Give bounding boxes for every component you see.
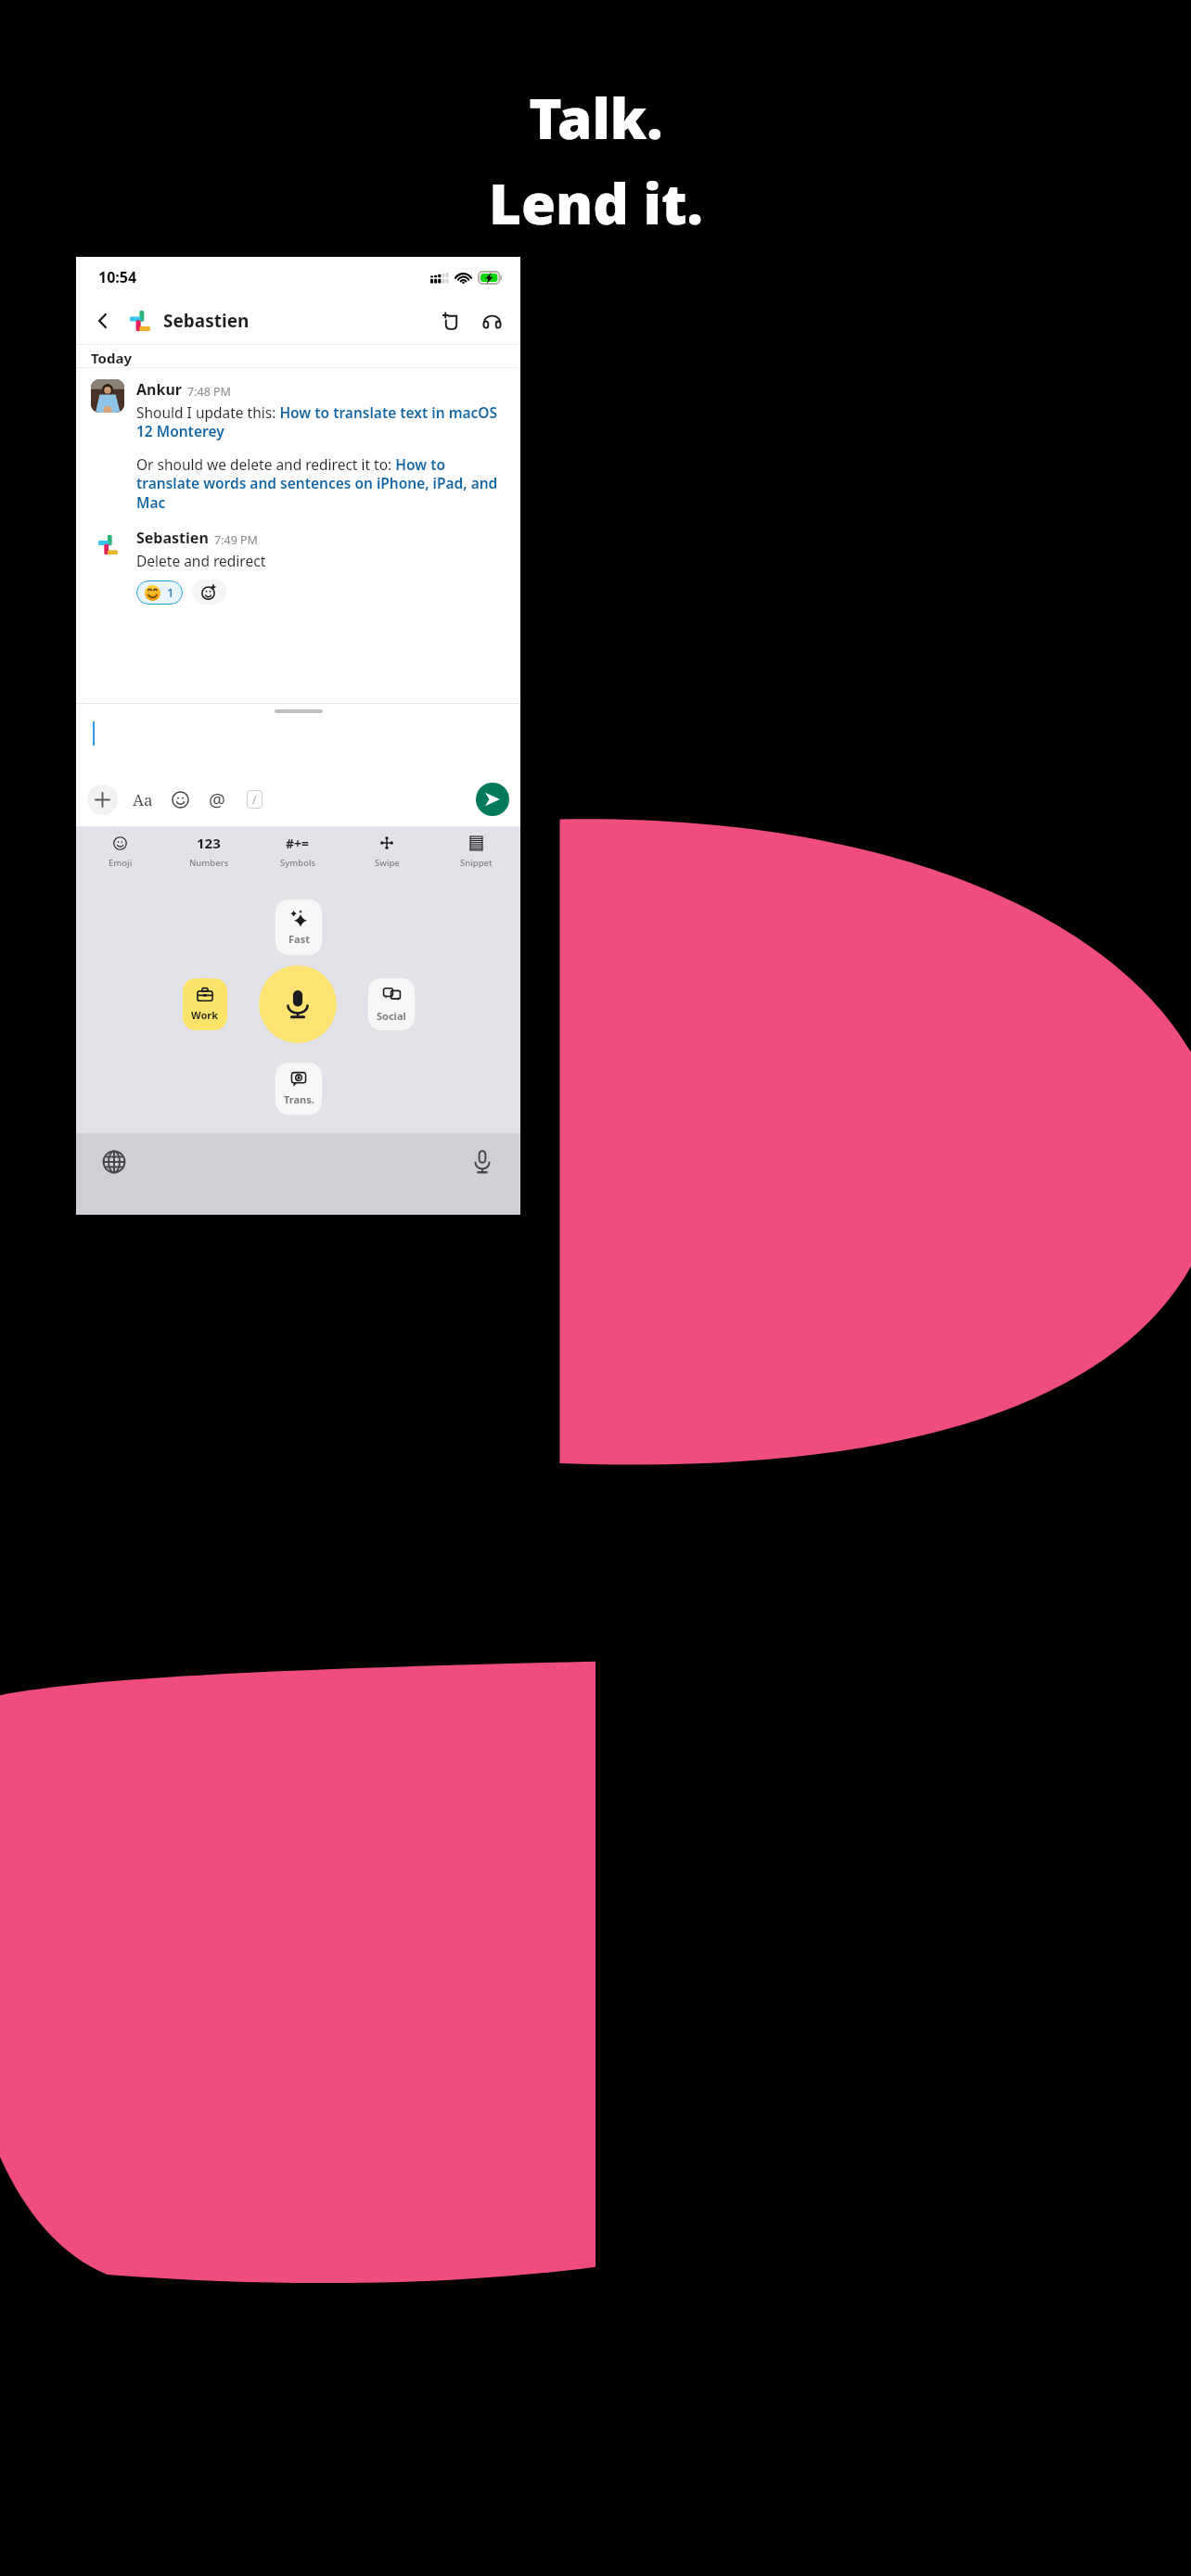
staticText: Snippet xyxy=(460,857,493,869)
staticText: Lend it. xyxy=(489,165,703,241)
button[interactable]: Change keyboard xyxy=(95,1142,134,1181)
staticText: 7:49 PM xyxy=(214,532,258,548)
button[interactable]: Send xyxy=(476,783,509,816)
button[interactable]: #+= xyxy=(253,826,342,875)
staticText: Social xyxy=(377,1009,406,1023)
button[interactable]: 1 xyxy=(136,580,183,605)
staticText: Numbers xyxy=(189,857,229,869)
button[interactable]: Swipe xyxy=(342,826,431,875)
button[interactable]: Snippet xyxy=(431,826,520,875)
staticText: 7:48 PM xyxy=(187,384,231,400)
button[interactable]: Dictation xyxy=(463,1142,502,1181)
button[interactable]: Format text xyxy=(129,785,157,813)
staticText: Fast xyxy=(288,932,310,946)
staticText: Should I update this: How to translate t… xyxy=(136,402,506,441)
button[interactable]: Social xyxy=(368,978,415,1030)
button[interactable]: Back xyxy=(89,307,117,335)
button[interactable]: Add reaction xyxy=(192,580,226,605)
button[interactable]: Add people xyxy=(435,305,467,337)
staticText: Symbols xyxy=(280,857,316,869)
staticText: Sebastien xyxy=(163,309,250,333)
button[interactable]: Ankur avatar xyxy=(91,379,124,413)
button[interactable]: Emoji xyxy=(76,826,164,875)
button[interactable]: Fast xyxy=(275,899,322,955)
staticText: Today xyxy=(91,349,133,367)
staticText: Trans. xyxy=(284,1092,314,1106)
staticText: #+= xyxy=(286,835,310,852)
button[interactable]: Microphone xyxy=(259,965,337,1043)
button[interactable]: 123 xyxy=(164,826,253,875)
button[interactable]: Mention xyxy=(203,785,231,813)
staticText: 1 xyxy=(167,584,174,601)
staticText: Emoji xyxy=(109,857,133,869)
staticText: Aa xyxy=(133,789,153,810)
staticText: 123 xyxy=(197,834,221,852)
button[interactable]: Work xyxy=(183,978,227,1030)
staticText: / xyxy=(252,792,257,807)
staticText: Talk. xyxy=(529,80,663,156)
staticText: Ankur xyxy=(136,379,182,400)
staticText: Sebastien xyxy=(136,528,209,548)
staticText: Or should we delete and redirect it to: … xyxy=(136,454,506,513)
button[interactable]: Attach xyxy=(87,784,118,815)
staticText: Delete and redirect xyxy=(136,551,266,570)
staticText: @ xyxy=(209,787,225,812)
staticText: Swipe xyxy=(375,857,400,869)
button[interactable]: Emoji xyxy=(166,785,194,813)
staticText: 10:54 xyxy=(98,267,137,287)
button[interactable]: Huddle xyxy=(476,305,507,337)
button[interactable]: Slash command xyxy=(240,785,268,813)
staticText: Work xyxy=(191,1008,219,1022)
button[interactable]: Trans. xyxy=(275,1063,322,1115)
